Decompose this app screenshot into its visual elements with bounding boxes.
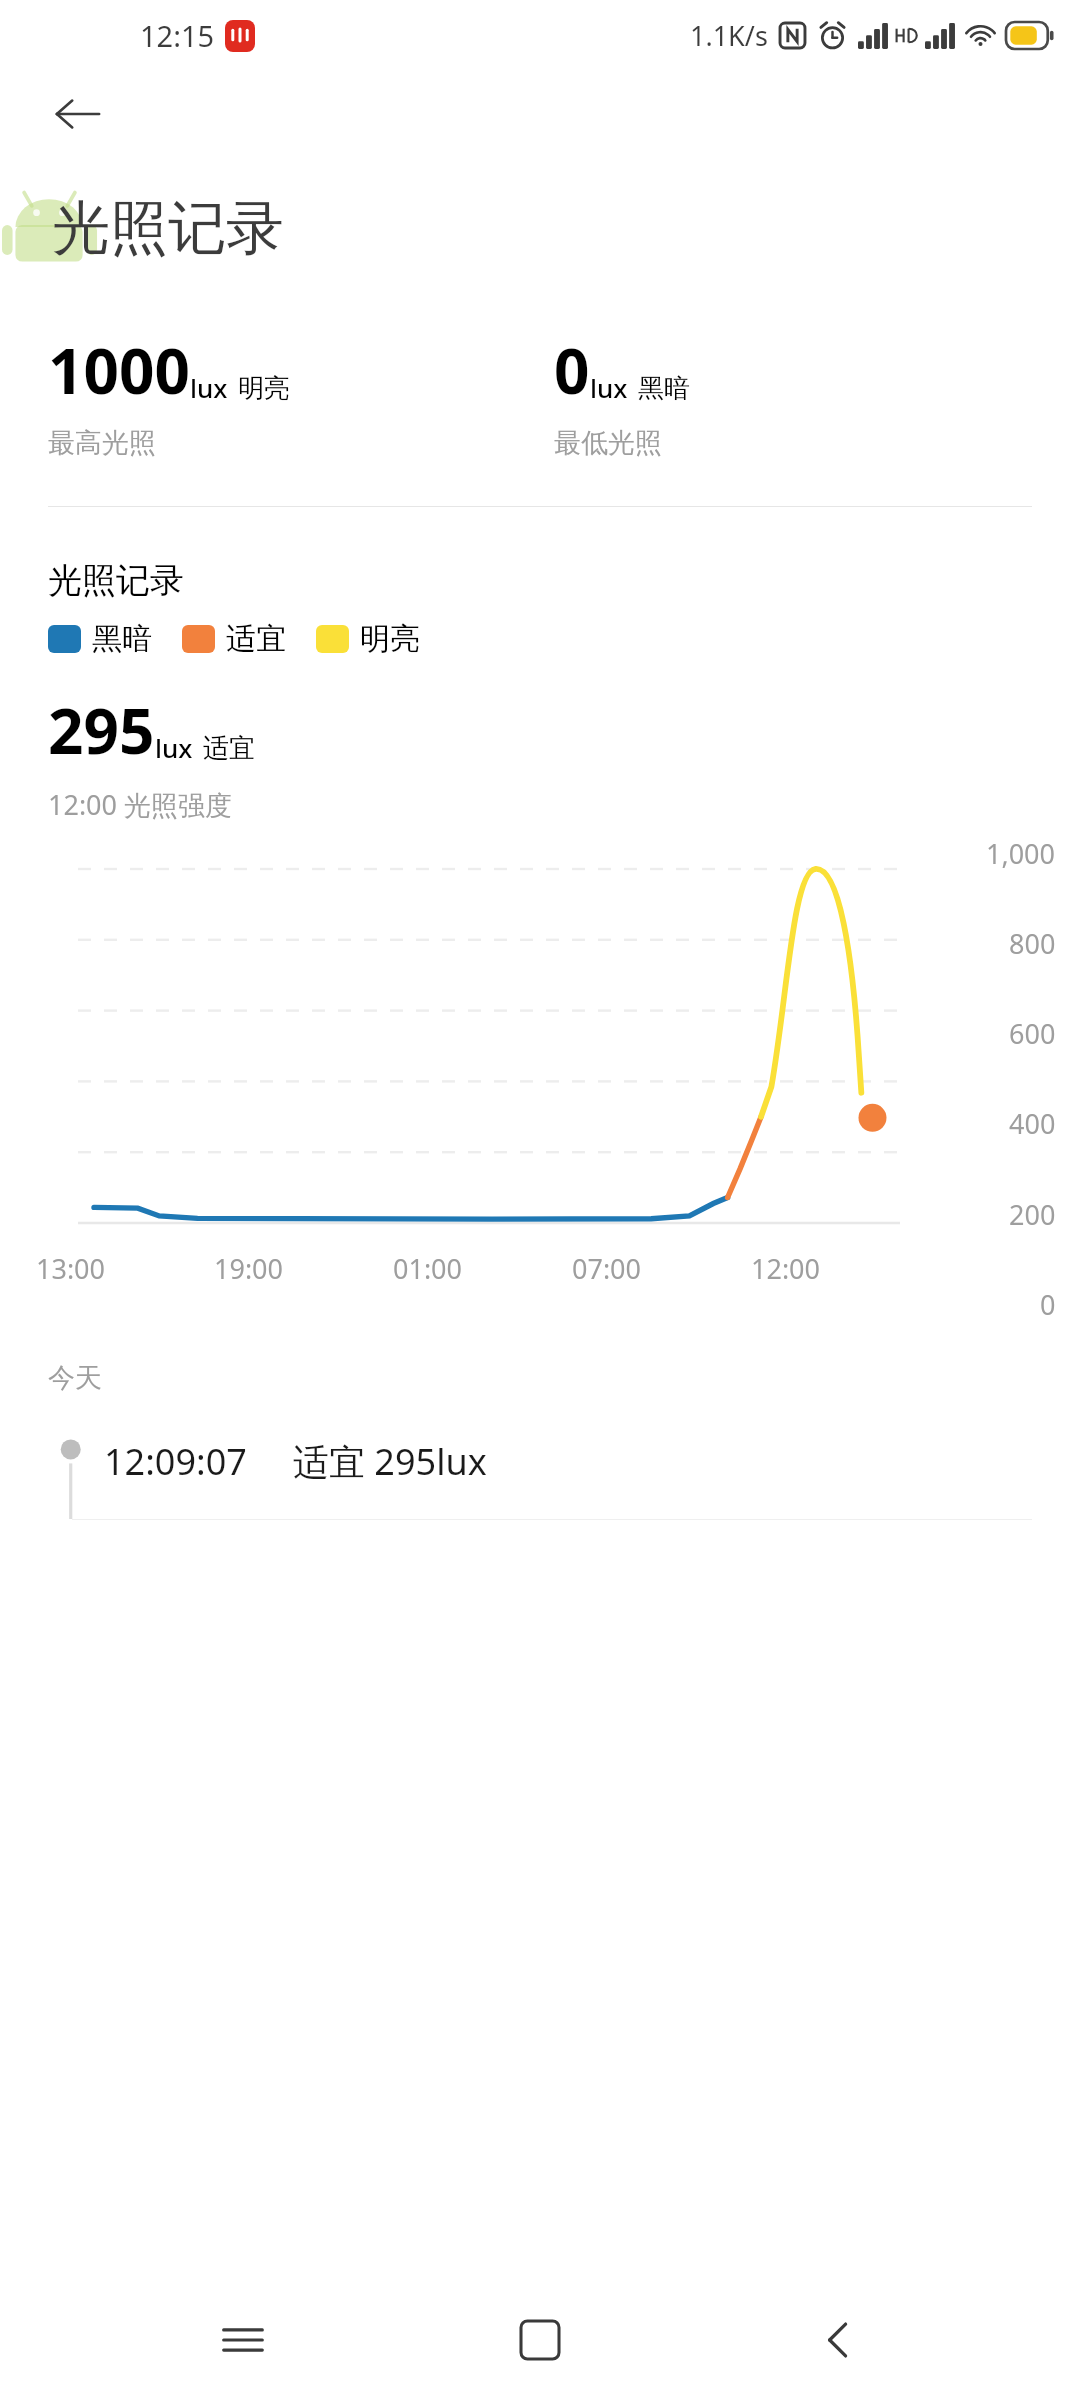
staticText: 最高光照 <box>48 426 156 460</box>
staticText: 19:00 <box>214 1250 284 1287</box>
staticText: 黑暗 <box>92 620 152 658</box>
staticText: 0 <box>554 328 590 412</box>
staticText: 光照记录 <box>52 192 284 265</box>
staticText: 07:00 <box>572 1250 642 1287</box>
staticText: 12:00 <box>751 1250 821 1287</box>
staticText: 13:00 <box>36 1250 106 1287</box>
staticText: 0 <box>1040 1286 1056 1323</box>
button[interactable]: Recent apps <box>188 2285 298 2395</box>
button[interactable]: Home <box>485 2285 595 2395</box>
staticText: 200 <box>1009 1196 1056 1233</box>
staticText: 1.1K/s <box>690 17 768 54</box>
staticText: 400 <box>1009 1105 1056 1142</box>
staticText: 最低光照 <box>554 426 662 460</box>
button[interactable]: Back <box>783 2285 893 2395</box>
staticText: 295 <box>48 688 155 772</box>
staticText: 12:00 光照强度 <box>48 786 233 823</box>
button[interactable]: Back <box>46 82 110 146</box>
staticText: 600 <box>1009 1015 1056 1052</box>
staticText: 适宜 <box>203 732 255 765</box>
staticText: lux <box>190 370 228 405</box>
staticText: 明亮 <box>360 620 420 658</box>
staticText: 12:15 <box>140 16 215 55</box>
staticText: lux <box>590 370 628 405</box>
staticText: 适宜 <box>226 620 286 658</box>
staticText: 12:09:07 <box>104 1437 247 1486</box>
staticText: 适宜 295lux <box>293 1437 487 1486</box>
staticText: 800 <box>1009 925 1056 962</box>
staticText: 01:00 <box>393 1250 463 1287</box>
staticText: 明亮 <box>238 372 290 405</box>
staticText: 黑暗 <box>638 372 690 405</box>
staticText: 1,000 <box>986 835 1056 872</box>
staticText: 今天 <box>48 1361 102 1395</box>
staticText: 光照记录 <box>48 559 184 602</box>
staticText: 1000 <box>48 328 190 412</box>
button[interactable]: 12:09:07 <box>0 1403 1080 1519</box>
staticText: lux <box>155 730 193 765</box>
